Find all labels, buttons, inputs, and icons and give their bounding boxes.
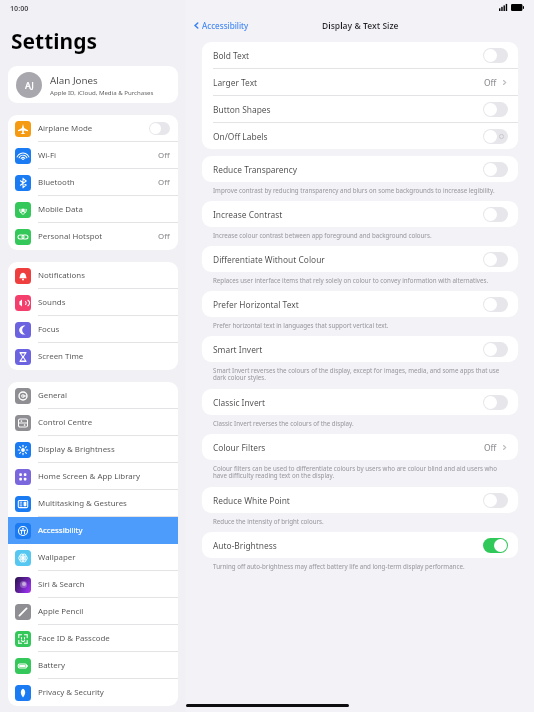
staticText: Accessibility [202, 20, 249, 31]
button[interactable]: Bluetooth [8, 169, 178, 196]
button[interactable]: Accessibility [190, 18, 251, 33]
button[interactable]: Larger Text [202, 69, 518, 95]
staticText: Smart Invert [213, 344, 263, 355]
staticText: Personal Hotspot [38, 231, 103, 242]
staticText: Off [158, 150, 170, 161]
button[interactable]: Off [483, 493, 508, 508]
staticText: Settings [11, 27, 98, 56]
staticText: Focus [38, 324, 60, 335]
staticText: Sounds [38, 297, 66, 308]
staticText: Colour Filters [213, 442, 266, 453]
button[interactable]: On/Off Labels [202, 123, 518, 149]
button[interactable]: Battery [8, 652, 178, 679]
staticText: Prefer Horizontal Text [213, 299, 299, 310]
button[interactable]: Smart Invert [202, 336, 518, 362]
staticText: Button Shapes [213, 104, 271, 115]
button[interactable]: Off [483, 207, 508, 222]
button[interactable]: Siri & Search [8, 571, 178, 598]
button[interactable]: Mobile Data [8, 196, 178, 223]
button[interactable]: Wi-Fi [8, 142, 178, 169]
button[interactable]: Off [483, 48, 508, 63]
staticText: Reduce the intensity of bright colours. [213, 517, 324, 525]
staticText: Increase Contrast [213, 209, 283, 220]
button[interactable]: Personal Hotspot [8, 223, 178, 250]
button[interactable]: Airplane Mode [8, 115, 178, 142]
staticText: Apple Pencil [38, 606, 84, 617]
staticText: Colour filters can be used to differenti… [213, 464, 504, 480]
staticText: Classic Invert [213, 397, 266, 408]
button[interactable]: Off [149, 122, 170, 135]
staticText: Alan Jones [50, 74, 98, 87]
staticText: Screen Time [38, 351, 84, 362]
staticText: Apple ID, iCloud, Media & Purchases [50, 88, 154, 96]
staticText: Off [158, 177, 170, 188]
staticText: Notifications [38, 270, 85, 281]
staticText: Mobile Data [38, 204, 83, 215]
button[interactable]: Auto-Brightness [202, 532, 518, 558]
button[interactable]: Off [483, 297, 508, 312]
button[interactable]: On [483, 538, 508, 553]
staticText: On/Off Labels [213, 131, 268, 142]
button[interactable]: Bold Text [202, 42, 518, 68]
staticText: Replaces user interface items that rely … [213, 276, 489, 284]
button[interactable]: Multitasking & Gestures [8, 490, 178, 517]
staticText: Bluetooth [38, 177, 75, 188]
button[interactable]: Off [483, 129, 508, 144]
staticText: Larger Text [213, 77, 258, 88]
staticText: Battery [38, 660, 65, 671]
staticText: Home Screen & App Library [38, 471, 141, 482]
staticText: Reduce White Point [213, 495, 290, 506]
button[interactable]: Button Shapes [202, 96, 518, 122]
button[interactable]: Home Screen & App Library [8, 463, 178, 490]
staticText: Classic Invert reverses the colours of t… [213, 419, 354, 427]
staticText: Prefer horizontal text in languages that… [213, 321, 389, 329]
button[interactable]: AJ [8, 66, 178, 103]
staticText: Smart Invert reverses the colours of the… [213, 366, 504, 382]
button[interactable]: Differentiate Without Colour [202, 246, 518, 272]
staticText: Wallpaper [38, 552, 76, 563]
button[interactable]: Off [483, 102, 508, 117]
button[interactable]: Off [483, 162, 508, 177]
button[interactable]: Apple Pencil [8, 598, 178, 625]
button[interactable]: Reduce White Point [202, 487, 518, 513]
staticText: Siri & Search [38, 579, 85, 590]
staticText: Display & Text Size [322, 20, 399, 32]
button[interactable]: Classic Invert [202, 389, 518, 415]
button[interactable]: Reduce Transparency [202, 156, 518, 182]
staticText: Off [158, 231, 170, 242]
staticText: Off [484, 77, 497, 88]
button[interactable]: Focus [8, 316, 178, 343]
button[interactable]: Prefer Horizontal Text [202, 291, 518, 317]
button[interactable]: Notifications [8, 262, 178, 289]
button[interactable]: Off [483, 395, 508, 410]
button[interactable]: Screen Time [8, 343, 178, 370]
staticText: Airplane Mode [38, 123, 93, 134]
button[interactable]: Colour Filters [202, 434, 518, 460]
staticText: Auto-Brightness [213, 540, 277, 551]
button[interactable]: Accessibility [8, 517, 178, 544]
staticText: Multitasking & Gestures [38, 498, 127, 509]
staticText: Turning off auto-brightness may affect b… [213, 562, 465, 570]
staticText: Improve contrast by reducing transparenc… [213, 186, 495, 194]
button[interactable]: Off [483, 342, 508, 357]
button[interactable]: Display & Brightness [8, 436, 178, 463]
button[interactable]: Off [483, 252, 508, 267]
staticText: Face ID & Passcode [38, 633, 110, 644]
staticText: Privacy & Security [38, 687, 104, 698]
staticText: Control Centre [38, 417, 93, 428]
staticText: 10:00 [10, 3, 29, 13]
staticText: General [38, 390, 68, 401]
staticText: Off [484, 442, 497, 453]
staticText: Display & Brightness [38, 444, 115, 455]
button[interactable]: Increase Contrast [202, 201, 518, 227]
button[interactable]: Control Centre [8, 409, 178, 436]
button[interactable]: Privacy & Security [8, 679, 178, 706]
staticText: Bold Text [213, 50, 250, 61]
button[interactable]: Wallpaper [8, 544, 178, 571]
staticText: Wi-Fi [38, 150, 57, 161]
button[interactable]: Sounds [8, 289, 178, 316]
staticText: Accessibility [38, 525, 83, 536]
staticText: AJ [25, 79, 34, 91]
button[interactable]: General [8, 382, 178, 409]
button[interactable]: Face ID & Passcode [8, 625, 178, 652]
